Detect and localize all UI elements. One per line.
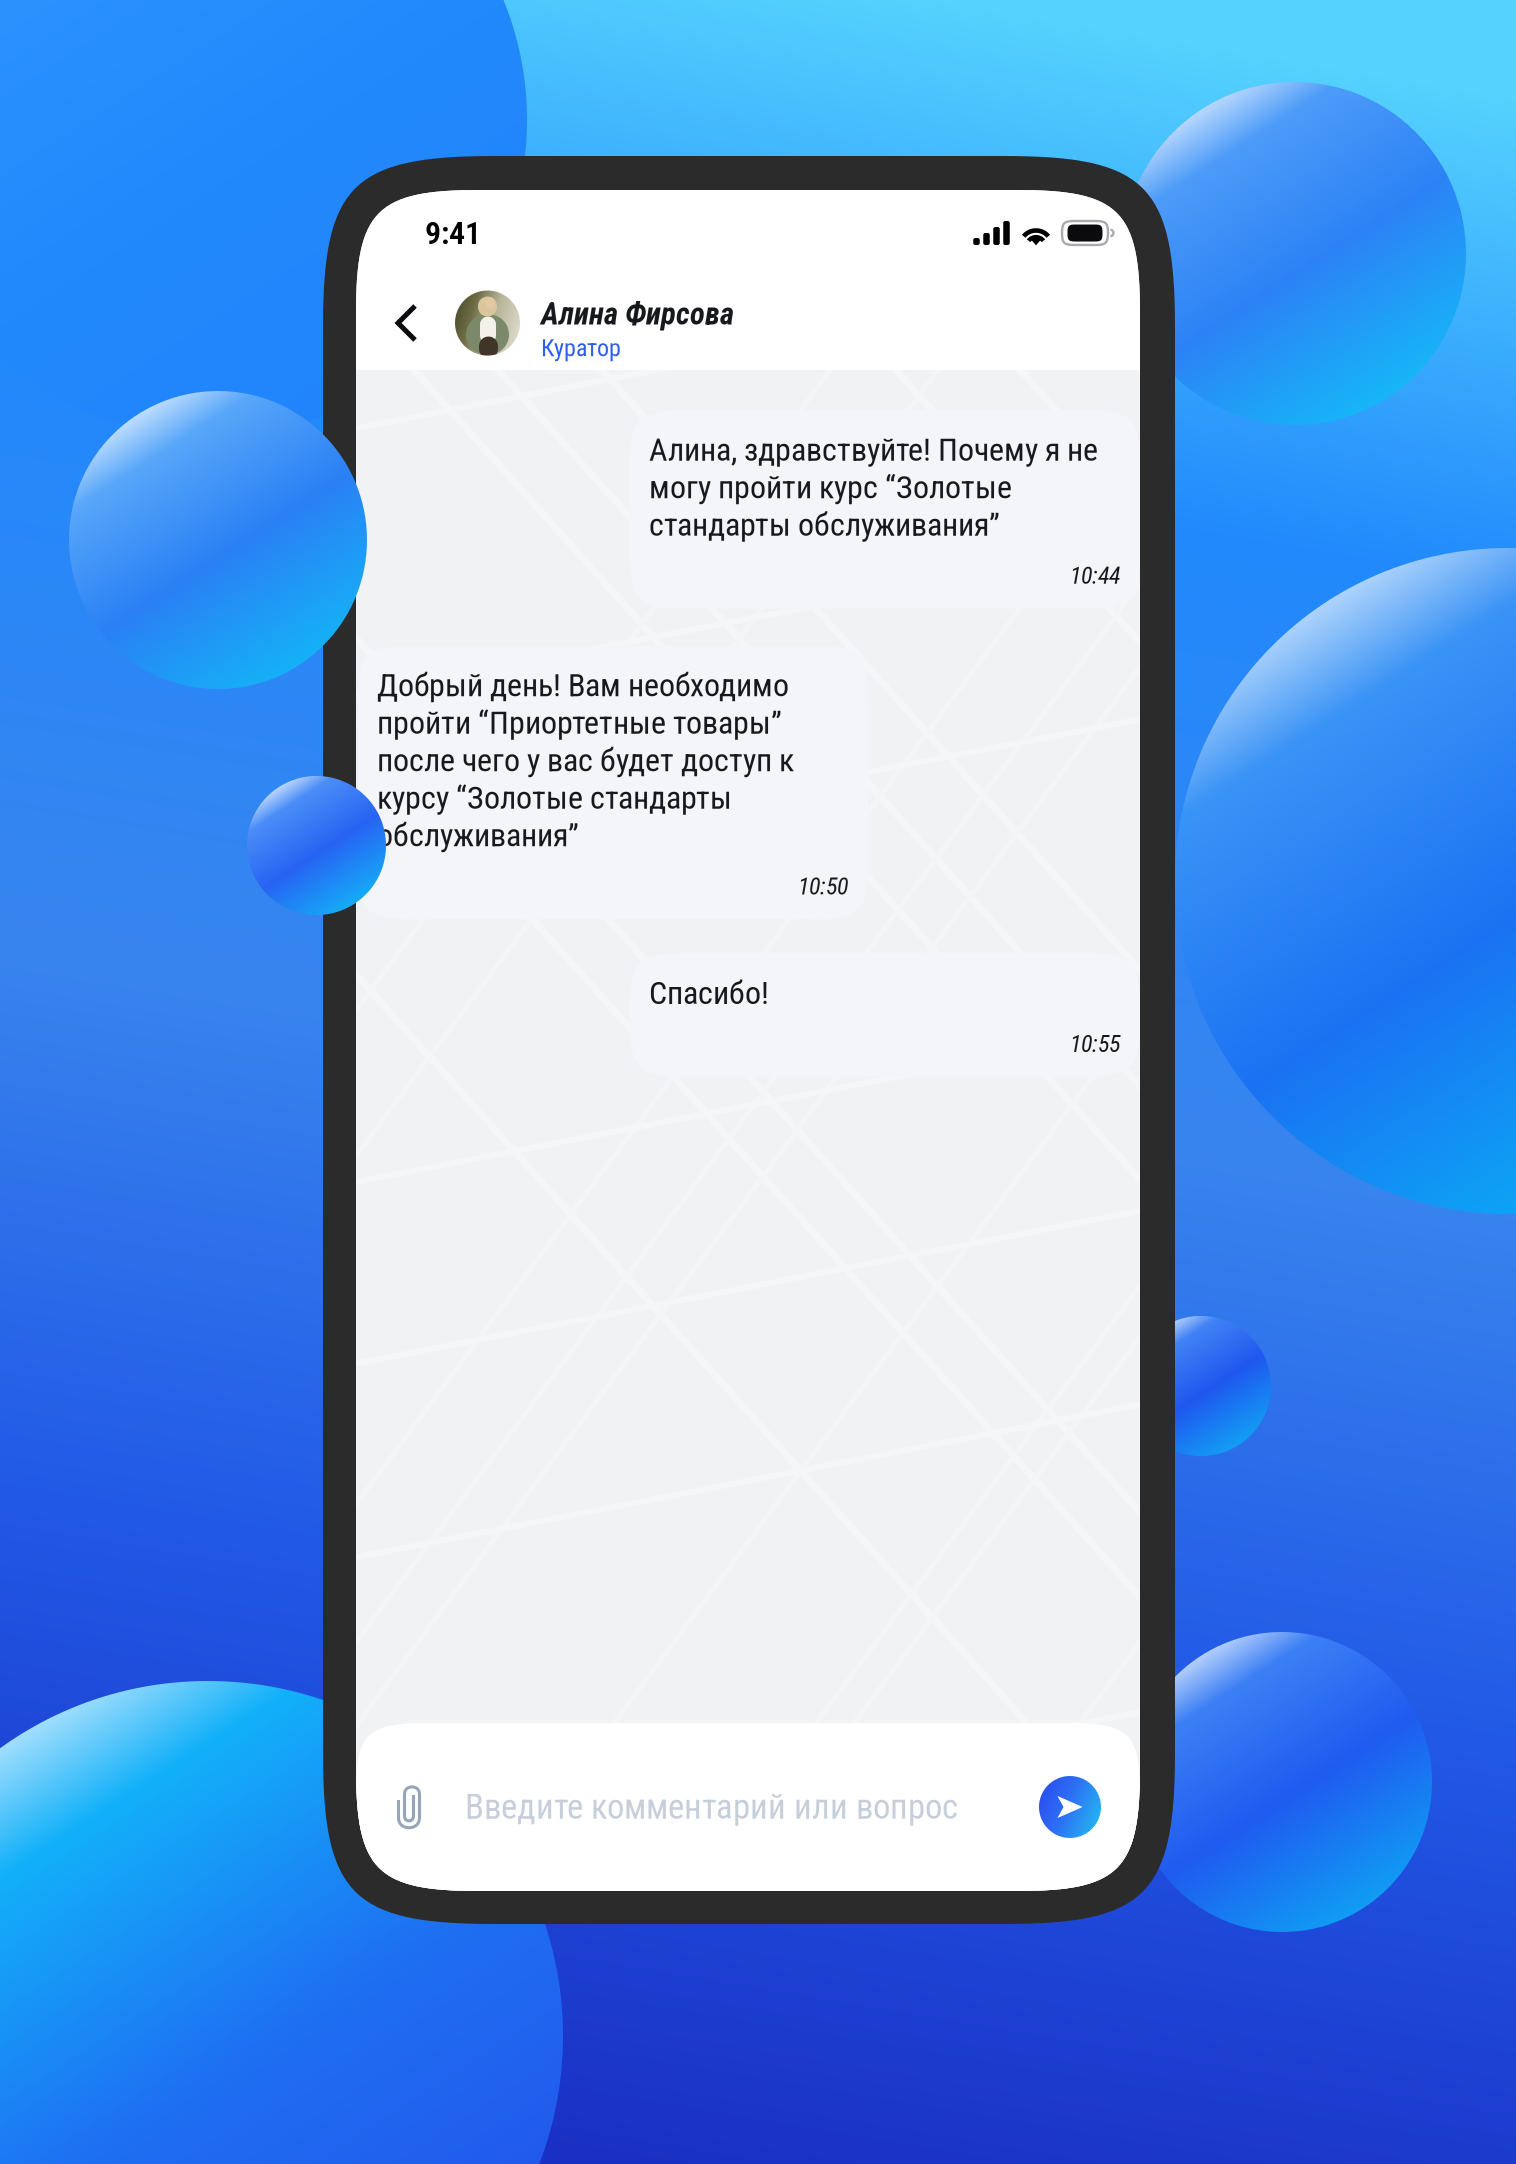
staticText: Алина, здравствуйте! Почему я не могу пр…	[649, 431, 1098, 543]
button[interactable]: Back	[374, 276, 439, 370]
staticText: Алина Фирсова	[541, 296, 734, 332]
staticText: 9:41	[425, 214, 481, 252]
staticText: 10:44	[1070, 561, 1120, 590]
staticText: Куратор	[541, 334, 621, 362]
button[interactable]: Алина Фирсова	[455, 276, 734, 370]
staticText: 10:55	[1070, 1030, 1120, 1058]
button[interactable]: Введите комментарий или вопрос	[435, 1762, 1025, 1852]
button[interactable]: Attach file	[383, 1762, 435, 1852]
staticText: Спасибо!	[649, 974, 769, 1012]
staticText: Добрый день! Вам необходимо пройти “Прио…	[377, 667, 794, 854]
staticText: 10:50	[798, 872, 848, 900]
staticText: Введите комментарий или вопрос	[465, 1787, 958, 1827]
button[interactable]: Send	[1025, 1762, 1115, 1852]
